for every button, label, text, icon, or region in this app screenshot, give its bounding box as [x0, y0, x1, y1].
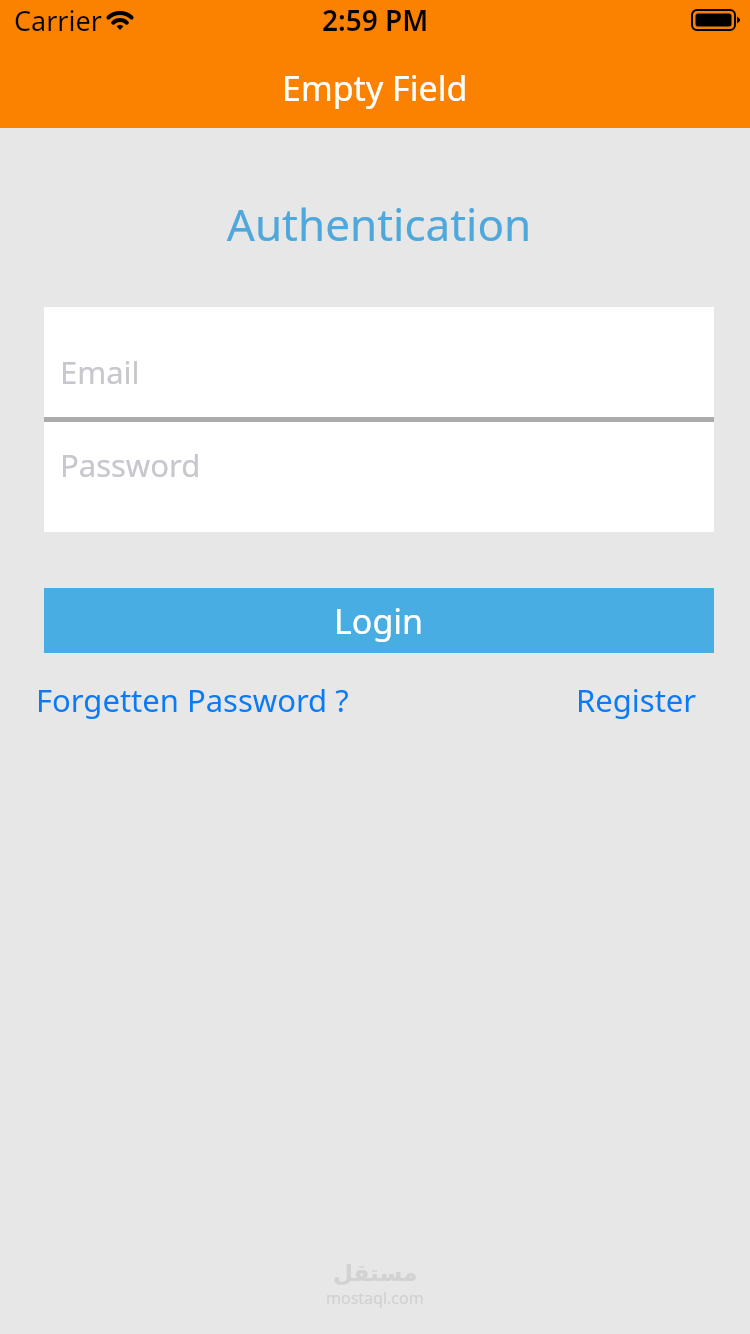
staticText: Email	[60, 351, 140, 393]
staticText: Password	[60, 444, 201, 486]
button[interactable]: Login	[44, 588, 714, 653]
staticText: مستقل	[333, 1260, 418, 1287]
button[interactable]: Register	[576, 679, 697, 721]
staticText: Carrier	[14, 2, 102, 39]
button[interactable]: Forgetten Password ?	[36, 679, 349, 721]
staticText: Authentication	[8, 194, 750, 254]
button[interactable]: Email	[44, 307, 714, 417]
staticText: 2:59 PM	[322, 1, 429, 39]
staticText: Empty Field	[282, 65, 468, 111]
staticText: mostaql.com	[326, 1287, 424, 1309]
staticText: Login	[334, 598, 424, 644]
button[interactable]: Password	[44, 422, 714, 532]
